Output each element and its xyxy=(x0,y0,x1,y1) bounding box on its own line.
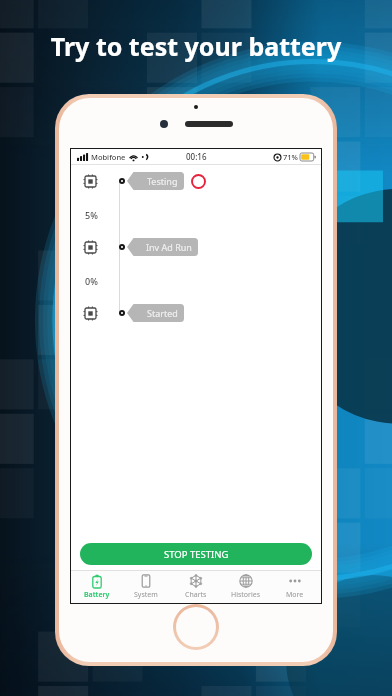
button[interactable]: System xyxy=(122,571,170,603)
staticText: Try to test your battery xyxy=(0,29,392,63)
button[interactable]: Battery xyxy=(73,571,121,603)
staticText: More xyxy=(286,590,304,600)
button[interactable]: Testing xyxy=(85,171,206,191)
staticText: Mobifone xyxy=(91,152,126,162)
staticText: Charts xyxy=(185,590,207,600)
button[interactable]: Started xyxy=(85,303,184,323)
staticText: Histories xyxy=(231,590,261,600)
staticText: Inv Ad Run xyxy=(146,241,192,253)
staticText: 5% xyxy=(85,209,98,221)
button[interactable]: Histories xyxy=(222,571,270,603)
staticText: Testing xyxy=(147,175,178,187)
staticText: System xyxy=(134,590,158,600)
button[interactable]: More xyxy=(271,571,319,603)
button[interactable]: Inv Ad Run xyxy=(85,237,198,257)
staticText: STOP TESTING xyxy=(164,548,229,561)
staticText: Battery xyxy=(84,590,110,600)
button[interactable]: Charts xyxy=(172,571,220,603)
button[interactable]: STOP TESTING xyxy=(80,543,312,565)
staticText: 71% xyxy=(283,152,298,162)
staticText: 00:16 xyxy=(186,151,207,162)
staticText: 0% xyxy=(85,275,98,287)
staticText: Started xyxy=(147,307,178,319)
